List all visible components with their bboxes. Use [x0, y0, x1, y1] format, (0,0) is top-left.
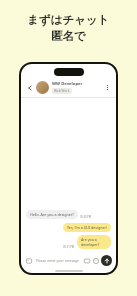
button[interactable]: Send [101, 255, 112, 266]
staticText: Web Work [54, 89, 70, 93]
staticText: 匿名で [51, 29, 86, 43]
staticText: Hello. Are you a designer? [30, 212, 74, 217]
button[interactable]: Attach image [25, 257, 33, 265]
button[interactable]: Keyboard [83, 257, 90, 264]
staticText: WW Developer [52, 81, 83, 87]
button[interactable]: Are you a developer? [77, 235, 111, 249]
button[interactable]: Back [25, 83, 34, 92]
staticText: Yes, I'm a GUI designer! [67, 225, 107, 230]
button[interactable]: Emoji [92, 257, 99, 264]
button[interactable]: Hello. Are you a designer? [26, 210, 78, 219]
button[interactable]: Yes, I'm a GUI designer! [63, 223, 111, 232]
staticText: Are you a developer? [81, 237, 107, 247]
staticText: まずはチャット [27, 13, 110, 27]
button[interactable]: More options [103, 83, 112, 92]
button[interactable]: Please enter your message [36, 258, 82, 263]
button[interactable]: Profile photo [36, 81, 49, 94]
staticText: Please enter your message [36, 258, 79, 263]
staticText: 05:31 PM [63, 245, 75, 249]
staticText: 05:30 PM [80, 215, 92, 219]
